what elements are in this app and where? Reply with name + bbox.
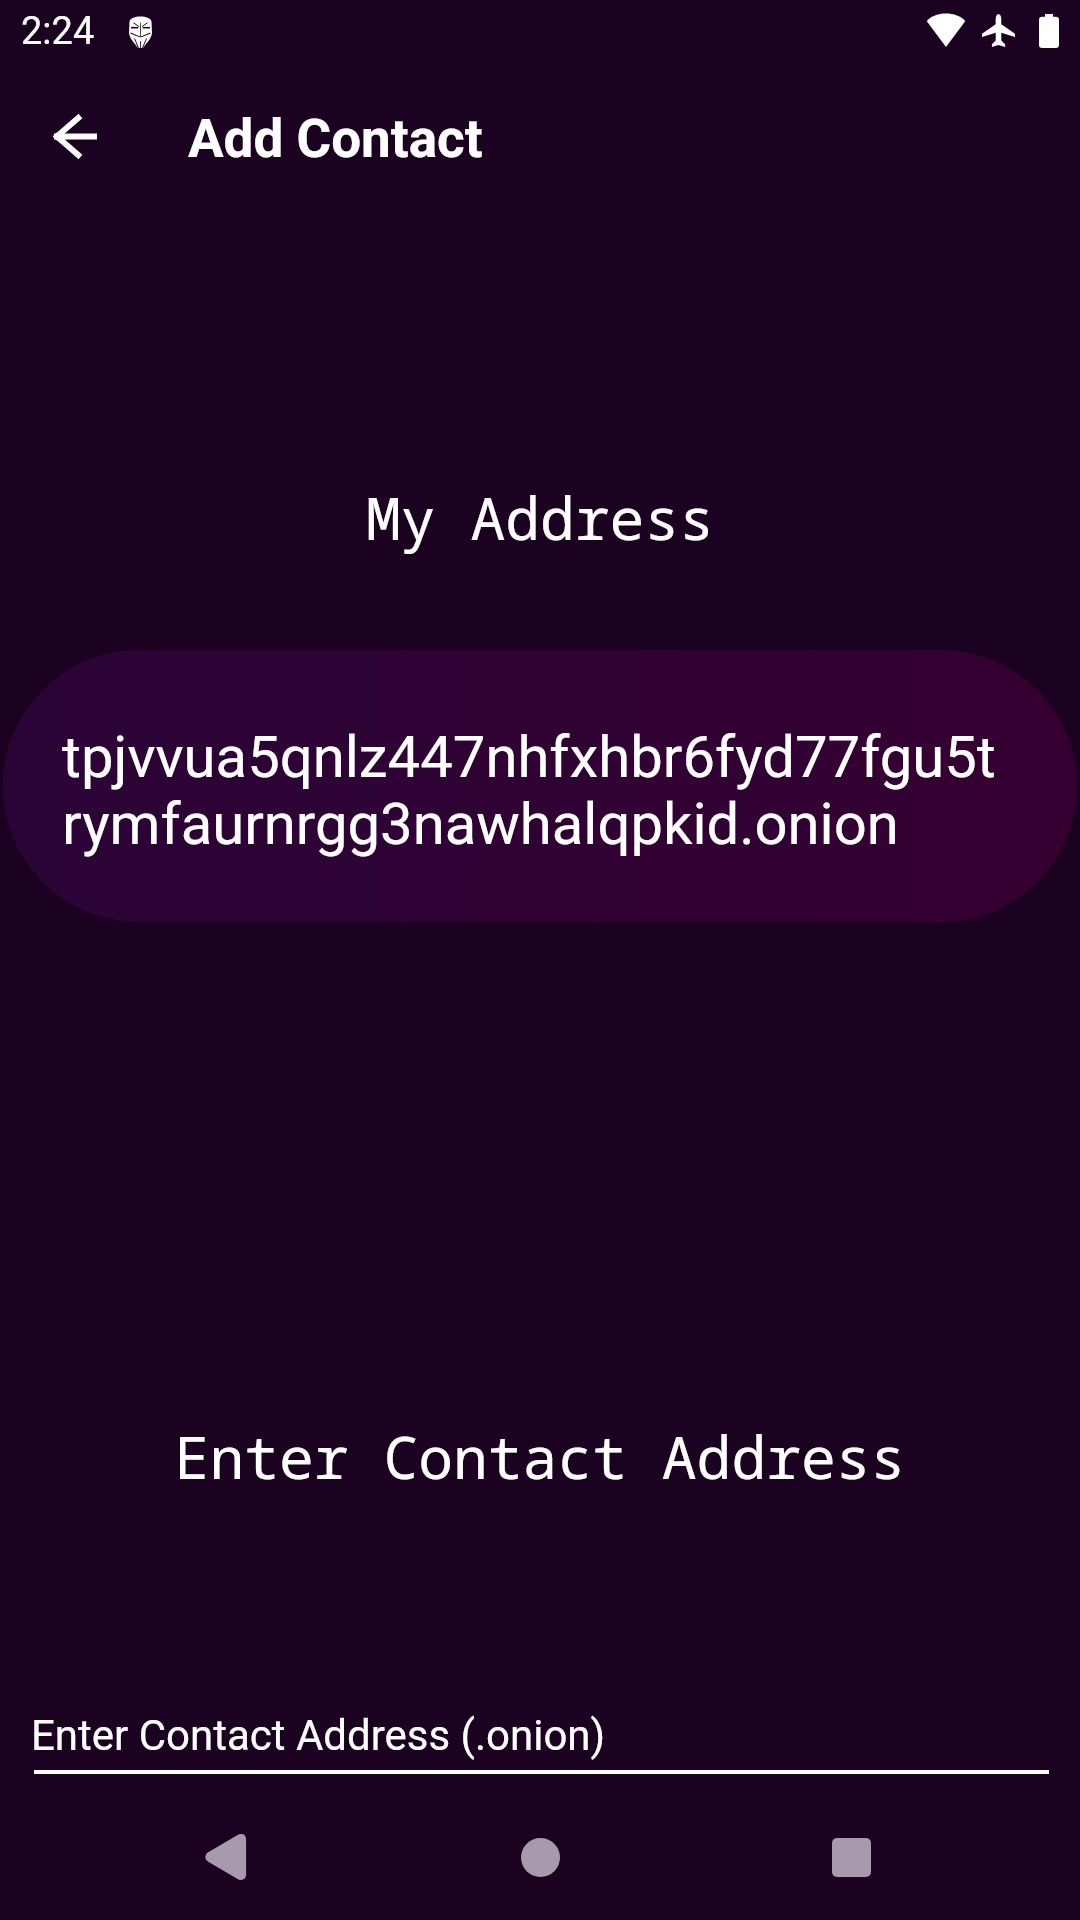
button[interactable]: tpjvvua5qnlz447nhfxhbr6fyd77fgu5t rymfau… [3,650,1077,922]
button[interactable]: Back [27,88,123,184]
staticText: tpjvvua5qnlz447nhfxhbr6fyd77fgu5t rymfau… [62,723,996,858]
button[interactable]: Back [180,1811,272,1903]
staticText: 2:24 [21,9,95,54]
staticText: My Address [0,478,1080,557]
button[interactable]: Recents [805,1811,897,1903]
button[interactable]: Enter Contact Address (.onion) [34,1703,1049,1777]
button[interactable]: Home [494,1811,586,1903]
staticText: Enter Contact Address [0,1417,1080,1496]
staticText: Add Contact [188,108,483,170]
staticText: Enter Contact Address (.onion) [31,1711,606,1760]
